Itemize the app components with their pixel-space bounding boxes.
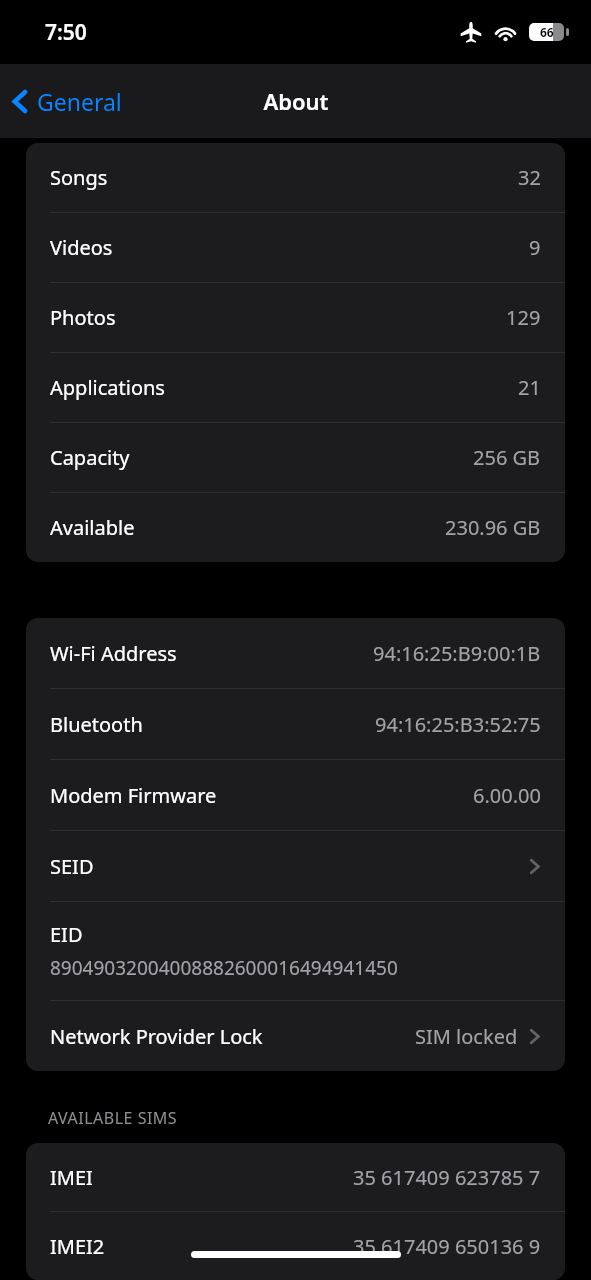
other: Open Network Provider Lock [528,1026,541,1047]
staticText: 32 [518,164,541,191]
staticText: IMEI2 [50,1233,105,1260]
staticText: 66 [540,24,554,40]
staticText: 256 GB [473,444,541,471]
other: Wi-Fi [493,23,518,42]
button[interactable]: SEID [26,831,565,901]
staticText: 35 617409 623785 7 [353,1164,541,1191]
staticText: 7:50 [45,18,87,47]
staticText: General [37,86,122,117]
staticText: Bluetooth [50,711,143,738]
staticText: 21 [518,374,541,401]
button[interactable]: EID [26,902,565,1000]
button[interactable]: IMEI [26,1143,565,1211]
staticText: Network Provider Lock [50,1023,263,1050]
button[interactable]: General [0,78,134,125]
staticText: 94:16:25:B3:52:75 [375,711,541,738]
staticText: 230.96 GB [445,514,541,541]
staticText: Capacity [50,444,130,471]
staticText: SIM locked [415,1023,518,1050]
other: Airplane mode [460,21,482,43]
other: Open SEID [528,856,541,877]
button[interactable]: Bluetooth [26,689,565,759]
button[interactable]: Songs [26,143,565,212]
staticText: 6.00.00 [473,782,541,809]
staticText: Videos [50,234,113,261]
button[interactable]: Network Provider Lock [26,1001,565,1071]
staticText: Modem Firmware [50,782,217,809]
staticText: IMEI [50,1164,93,1191]
staticText: 89049032004008882600016494941450 [50,955,398,981]
staticText: EID [50,921,83,948]
staticText: 129 [506,304,541,331]
button[interactable]: Available [26,493,565,562]
staticText: AVAILABLE SIMS [48,1107,178,1129]
staticText: SEID [50,853,94,880]
staticText: Applications [50,374,165,401]
staticText: Songs [50,164,108,191]
staticText: 35 617409 650136 9 [353,1233,541,1260]
staticText: About [263,86,329,116]
staticText: 94:16:25:B9:00:1B [373,640,541,667]
staticText: 9 [529,234,541,261]
button[interactable]: Capacity [26,423,565,492]
staticText: Photos [50,304,116,331]
button[interactable]: IMEI2 [26,1212,565,1280]
button[interactable]: Modem Firmware [26,760,565,830]
button[interactable]: Applications [26,353,565,422]
staticText: Wi-Fi Address [50,640,177,667]
button[interactable]: Videos [26,213,565,282]
button[interactable]: Wi-Fi Address [26,618,565,688]
staticText: Available [50,514,135,541]
button[interactable]: Photos [26,283,565,352]
